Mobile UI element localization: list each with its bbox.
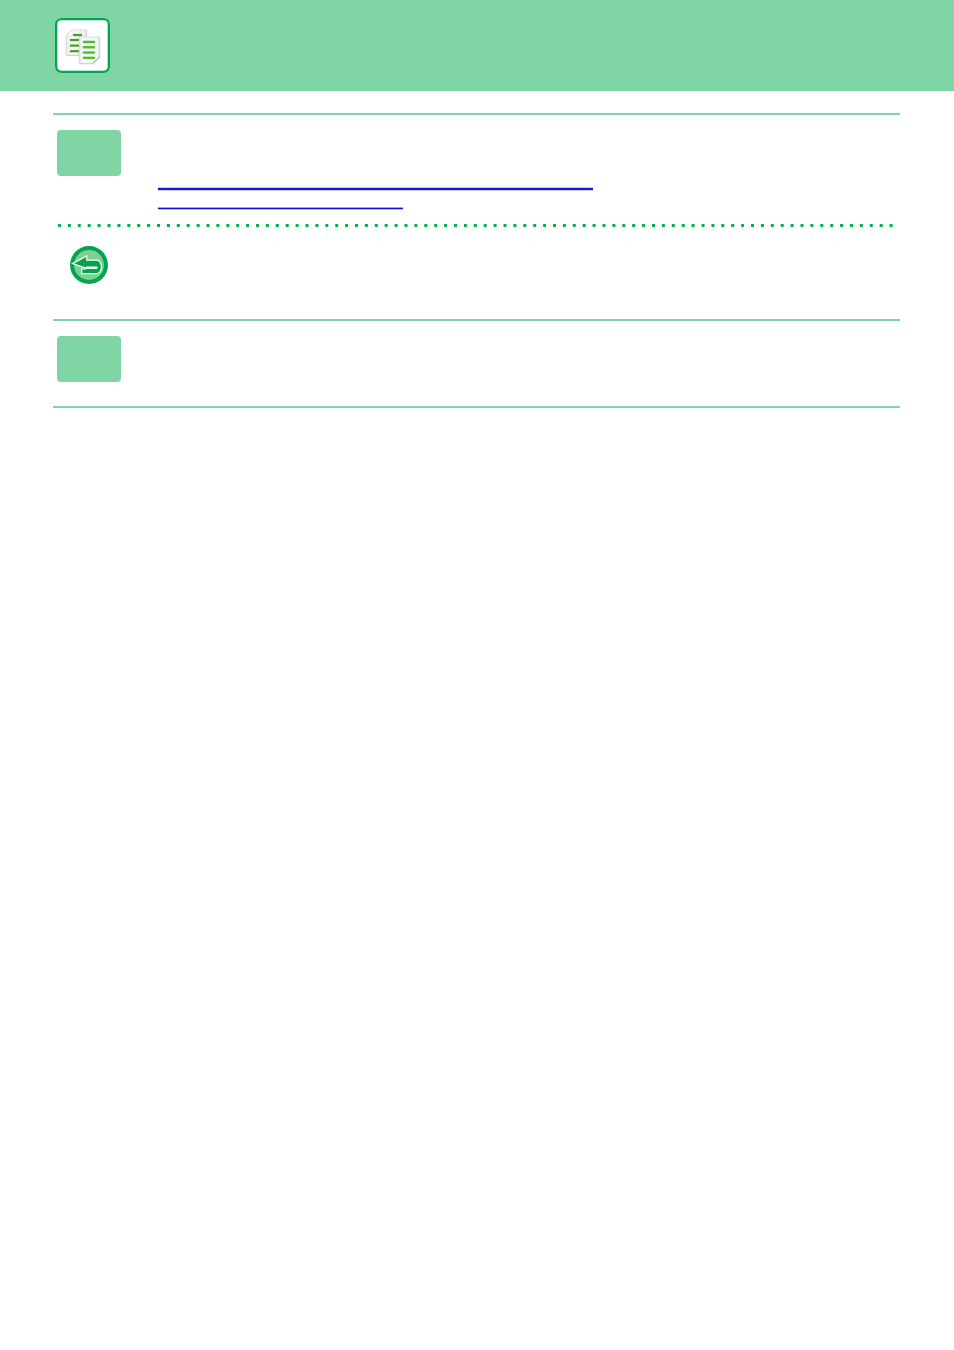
button[interactable] <box>57 336 121 382</box>
button[interactable]: Undo <box>70 246 108 284</box>
button[interactable] <box>57 130 121 176</box>
button[interactable] <box>158 180 593 192</box>
button[interactable] <box>158 199 403 211</box>
button[interactable]: Copy <box>55 18 110 73</box>
